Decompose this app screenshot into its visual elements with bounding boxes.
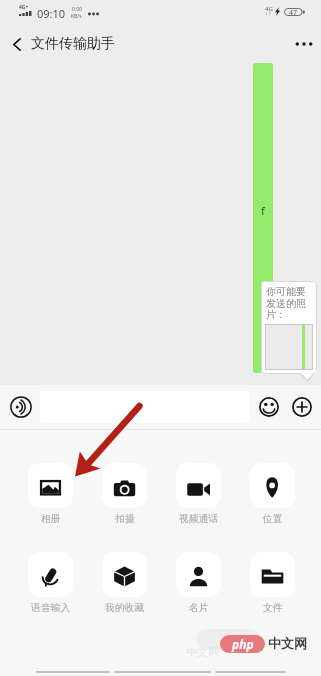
staticText: 语音输入 bbox=[31, 602, 71, 614]
button[interactable]: 视频通话 bbox=[176, 463, 221, 525]
button[interactable]: More options bbox=[289, 391, 315, 423]
staticText: 文件 bbox=[263, 602, 283, 614]
button[interactable]: More bbox=[287, 31, 321, 57]
button[interactable]: 我的收藏 bbox=[102, 552, 147, 614]
staticText: 4G bbox=[265, 5, 273, 13]
staticText: 我的收藏 bbox=[105, 602, 145, 614]
staticText: php bbox=[232, 636, 254, 652]
staticText: 0.00 bbox=[72, 6, 82, 13]
staticText: 名片 bbox=[189, 602, 209, 614]
button[interactable]: 名片 bbox=[176, 552, 221, 614]
staticText: 相册 bbox=[41, 513, 61, 525]
staticText: 47 bbox=[289, 8, 298, 16]
button[interactable]: f bbox=[253, 63, 273, 373]
staticText: . bbox=[260, 349, 263, 364]
staticText: 09:10 bbox=[37, 6, 66, 21]
staticText: 你可能要发送的照片： bbox=[266, 285, 314, 321]
button[interactable]: Back bbox=[5, 31, 29, 57]
button[interactable]: Emoji bbox=[256, 391, 282, 423]
staticText: ↓↑ bbox=[265, 11, 272, 16]
staticText: 中文网 bbox=[186, 645, 219, 659]
staticText: 中文网 bbox=[268, 635, 307, 651]
staticText: 拍摄 bbox=[115, 513, 135, 525]
staticText: 视频通话 bbox=[179, 513, 219, 525]
button[interactable]: 位置 bbox=[250, 463, 295, 525]
button[interactable]: Voice input bbox=[5, 391, 37, 423]
staticText: 位置 bbox=[263, 513, 283, 525]
button[interactable]: 语音输入 bbox=[28, 552, 73, 614]
staticText: KB/s bbox=[71, 13, 82, 20]
button[interactable]: 文件 bbox=[250, 552, 295, 614]
staticText: 文件传输助手 bbox=[31, 35, 115, 53]
button[interactable]: 你可能要发送的照片： bbox=[261, 281, 317, 374]
staticText: 4G+ bbox=[19, 4, 29, 11]
staticText: f bbox=[261, 203, 265, 218]
button[interactable]: 相册 bbox=[28, 463, 73, 525]
button[interactable] bbox=[40, 391, 250, 423]
button[interactable]: 拍摄 bbox=[102, 463, 147, 525]
